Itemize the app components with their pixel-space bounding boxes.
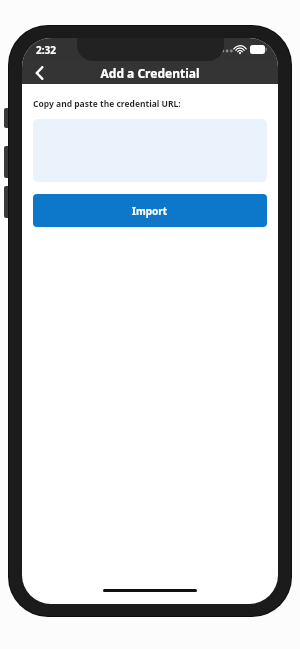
staticText: Copy and paste the credential URL: <box>33 98 181 110</box>
staticText: Add a Credential <box>100 65 200 81</box>
button[interactable]: Import <box>33 194 267 227</box>
button[interactable]: Back <box>22 61 56 84</box>
staticText: Import <box>132 204 168 218</box>
staticText: 2:32 <box>36 43 56 57</box>
